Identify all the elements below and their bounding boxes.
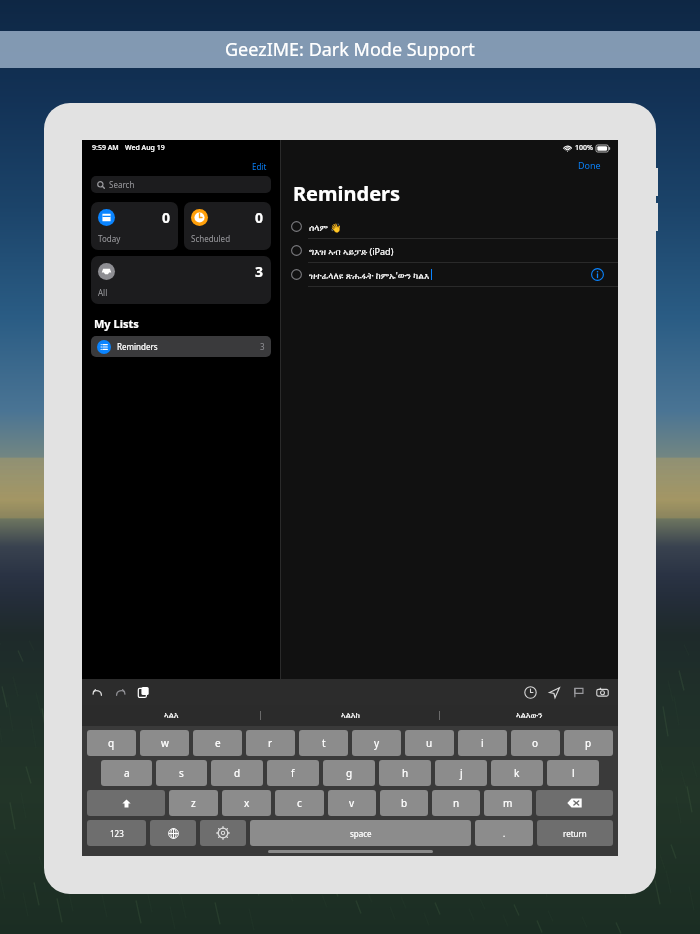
staticText: i	[481, 736, 484, 750]
button[interactable]: Undo	[91, 686, 104, 699]
staticText: All	[98, 287, 108, 298]
button[interactable]: ግእዝ ኣብ ኣይፓድ (iPad)	[281, 239, 618, 263]
staticText: ኣልእውን	[516, 712, 543, 720]
button[interactable]: .	[475, 820, 533, 846]
button[interactable]: t	[299, 730, 348, 756]
button[interactable]: i	[458, 730, 507, 756]
staticText: Scheduled	[191, 233, 231, 244]
button[interactable]: ኣልእ	[82, 705, 260, 726]
button[interactable]: a	[101, 760, 152, 786]
button[interactable]: x	[222, 790, 271, 816]
staticText: g	[346, 766, 353, 780]
staticText: Search	[109, 179, 135, 190]
button[interactable]: ሰላም 👋	[281, 215, 618, 239]
staticText: 123	[110, 828, 124, 839]
staticText: 3	[255, 262, 264, 281]
staticText: o	[532, 736, 539, 750]
staticText: b	[401, 796, 408, 810]
button[interactable]: Paste	[137, 686, 150, 699]
staticText: n	[453, 796, 460, 810]
button[interactable]: v	[328, 790, 376, 816]
staticText: Edit	[252, 161, 267, 172]
button[interactable]: return	[537, 820, 613, 846]
staticText: .	[503, 828, 506, 839]
staticText: z	[191, 796, 196, 810]
staticText: r	[268, 736, 273, 750]
button[interactable]: r	[246, 730, 295, 756]
button[interactable]: n	[432, 790, 480, 816]
button[interactable]: Edit	[249, 159, 270, 174]
button[interactable]: w	[140, 730, 189, 756]
staticText: My Lists	[94, 316, 139, 331]
button[interactable]: 123	[87, 820, 146, 846]
staticText: GeezIME: Dark Mode Support	[225, 37, 475, 62]
staticText: h	[402, 766, 409, 780]
button[interactable]: ዝተፈላለዩ ጽሑፋት ከምኡ'ውን ካልእ	[281, 263, 618, 287]
button[interactable]: ኣልእከ	[261, 705, 439, 726]
button[interactable]: q	[87, 730, 136, 756]
staticText: s	[179, 766, 184, 780]
button[interactable]: e	[193, 730, 242, 756]
button[interactable]: p	[564, 730, 613, 756]
button[interactable]: c	[275, 790, 324, 816]
staticText: ሰላም 👋	[309, 221, 342, 233]
button[interactable]: Details	[591, 268, 604, 281]
button[interactable]: j	[435, 760, 487, 786]
button[interactable]: Backspace	[536, 790, 613, 816]
staticText: c	[297, 796, 302, 810]
button[interactable]: Reminders	[91, 336, 271, 357]
staticText: t	[322, 736, 326, 750]
staticText: return	[563, 828, 587, 839]
staticText: w	[161, 736, 169, 750]
button[interactable]: f	[267, 760, 319, 786]
staticText: Today	[98, 233, 121, 244]
button[interactable]: 3	[91, 256, 271, 304]
staticText: Wed Aug 19	[125, 143, 165, 153]
button[interactable]: m	[484, 790, 532, 816]
staticText: m	[503, 796, 513, 810]
button[interactable]: u	[405, 730, 454, 756]
staticText: v	[349, 796, 355, 810]
button[interactable]: Location	[548, 686, 561, 699]
staticText: 9:59 AM	[92, 143, 119, 153]
button[interactable]: Flag	[572, 686, 585, 699]
staticText: q	[108, 736, 115, 750]
staticText: j	[460, 766, 463, 780]
button[interactable]: Shift	[87, 790, 165, 816]
button[interactable]: Done	[575, 157, 604, 173]
staticText: space	[350, 828, 372, 839]
button[interactable]: z	[169, 790, 218, 816]
staticText: l	[572, 766, 575, 780]
button[interactable]: d	[211, 760, 263, 786]
staticText: a	[124, 766, 130, 780]
button[interactable]: k	[491, 760, 543, 786]
staticText: p	[585, 736, 592, 750]
staticText: u	[426, 736, 433, 750]
button[interactable]: Change keyboard	[150, 820, 196, 846]
button[interactable]: 0	[184, 202, 271, 250]
button[interactable]: o	[511, 730, 560, 756]
button[interactable]: Recent	[524, 686, 537, 699]
button[interactable]: Redo	[114, 686, 127, 699]
button[interactable]: Settings	[200, 820, 246, 846]
button[interactable]: b	[380, 790, 428, 816]
button[interactable]: Search	[91, 176, 271, 193]
staticText: 0	[255, 208, 264, 227]
button[interactable]: h	[379, 760, 431, 786]
button[interactable]: space	[250, 820, 471, 846]
staticText: 0	[162, 208, 171, 227]
staticText: Reminders	[117, 341, 158, 352]
button[interactable]: l	[547, 760, 599, 786]
staticText: 100%	[575, 143, 593, 153]
staticText: e	[215, 736, 221, 750]
button[interactable]: ኣልእውን	[440, 705, 618, 726]
button[interactable]: Camera	[596, 686, 609, 699]
button[interactable]: y	[352, 730, 401, 756]
button[interactable]: g	[323, 760, 375, 786]
button[interactable]: s	[156, 760, 207, 786]
button[interactable]: 0	[91, 202, 178, 250]
staticText: ኣልእከ	[341, 712, 360, 720]
staticText: d	[234, 766, 241, 780]
staticText: y	[374, 736, 380, 750]
staticText: k	[514, 766, 520, 780]
